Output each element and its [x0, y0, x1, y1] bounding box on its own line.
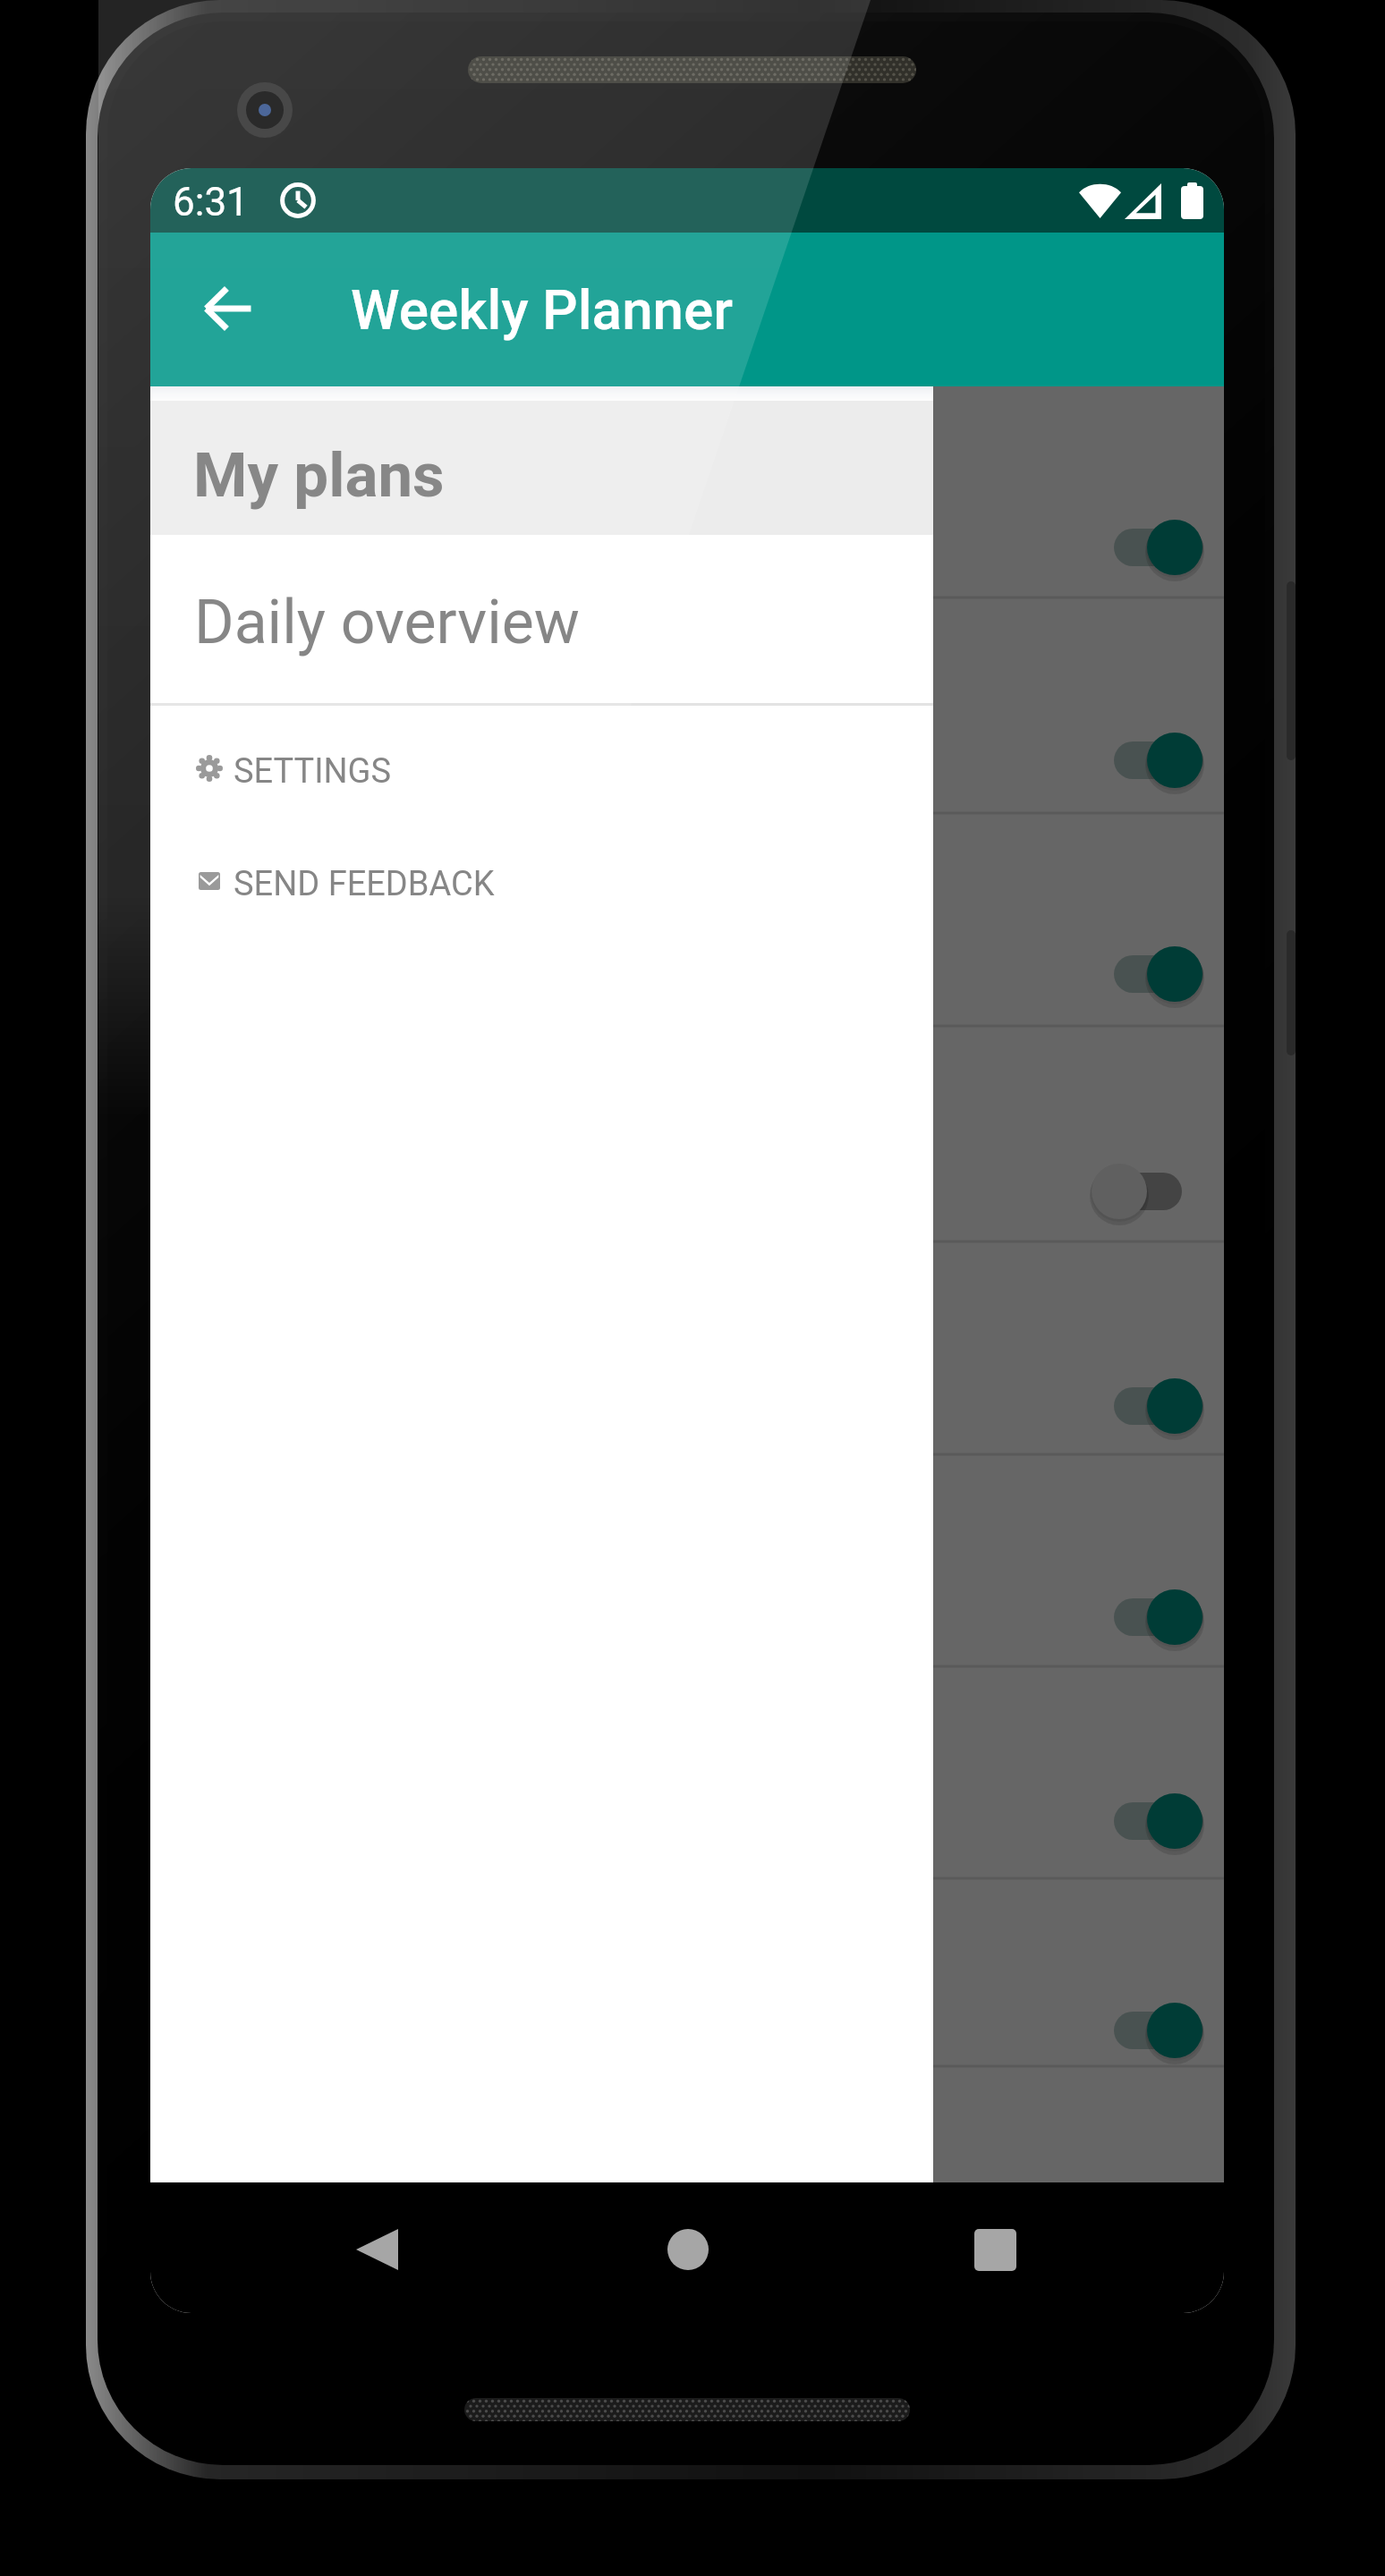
button[interactable]: My plans [150, 401, 933, 535]
staticText: My plans [193, 439, 445, 512]
button[interactable]: Daily overview [150, 535, 933, 703]
button[interactable]: SEND FEEDBACK [150, 828, 933, 941]
button[interactable]: Off [1080, 1157, 1202, 1225]
button[interactable]: On [1101, 726, 1223, 794]
button[interactable]: On [1101, 940, 1223, 1008]
button[interactable]: On [1101, 513, 1223, 581]
button[interactable]: On [1101, 1583, 1223, 1651]
staticText: SEND FEEDBACK [234, 864, 495, 904]
button[interactable]: Home [652, 2214, 724, 2285]
staticText: 6:31 [173, 179, 249, 225]
staticText: Weekly Planner [351, 277, 734, 343]
button[interactable]: Navigate up [191, 271, 266, 346]
button[interactable]: On [1101, 1372, 1223, 1440]
button[interactable]: Recent apps [959, 2214, 1031, 2285]
button[interactable]: On [1101, 1787, 1223, 1855]
staticText: SETTINGS [234, 751, 392, 792]
button[interactable]: Back [341, 2214, 412, 2285]
staticText: Daily overview [194, 587, 580, 658]
button[interactable]: On [1101, 1996, 1223, 2064]
button[interactable]: SETTINGS [150, 716, 933, 828]
